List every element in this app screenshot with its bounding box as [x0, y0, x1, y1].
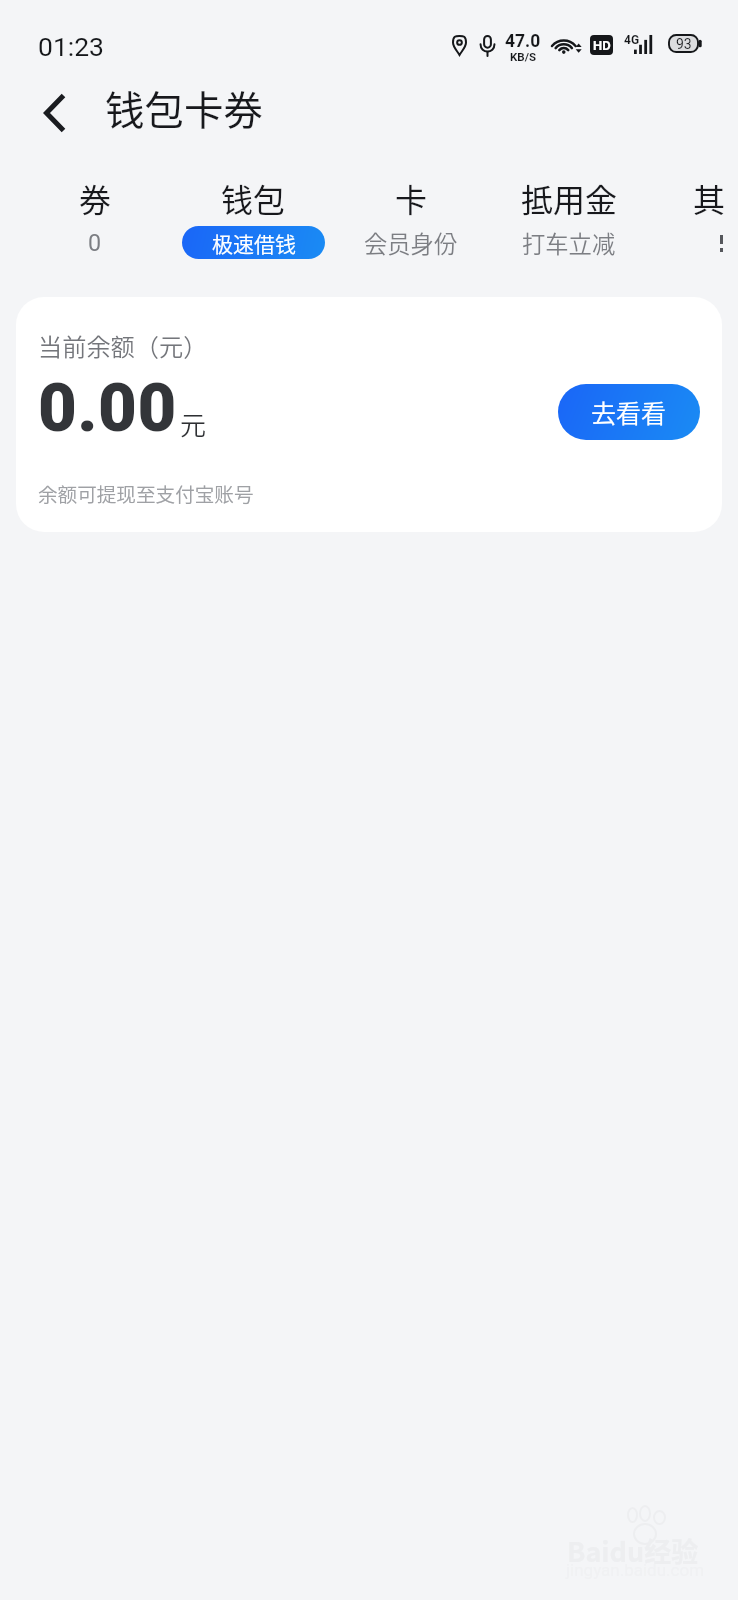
- staticText: 钱包卡券: [105, 79, 263, 136]
- staticText: 余额可提现至支付宝账号: [38, 479, 254, 507]
- staticText: 当前余额（元）: [38, 328, 208, 363]
- button[interactable]: 钱包: [174, 154, 332, 259]
- staticText: 打车立减: [522, 226, 616, 260]
- button[interactable]: 卡: [332, 154, 490, 260]
- staticText: 卡: [395, 175, 428, 221]
- button[interactable]: 去看看: [558, 384, 700, 440]
- staticText: Baidu经验: [567, 1531, 699, 1570]
- staticText: 01:23: [38, 31, 104, 62]
- staticText: KB/S: [510, 50, 537, 63]
- staticText: 0: [88, 229, 102, 256]
- staticText: 抵用金: [521, 175, 618, 221]
- staticText: 会员身份: [364, 226, 458, 260]
- staticText: 4G: [624, 33, 640, 47]
- staticText: HD: [593, 38, 611, 53]
- button[interactable]: Back: [0, 66, 105, 154]
- button[interactable]: 当前余额（元）: [16, 297, 722, 532]
- staticText: 0.00: [38, 369, 177, 448]
- staticText: 极速借钱: [212, 228, 296, 258]
- button[interactable]: 券: [16, 154, 174, 256]
- staticText: 47.0: [505, 31, 541, 52]
- staticText: 去看看: [591, 394, 667, 430]
- staticText: 券: [79, 175, 112, 221]
- button[interactable]: 其他: [646, 154, 724, 226]
- button[interactable]: 抵用金: [490, 154, 648, 260]
- staticText: 93: [676, 36, 692, 52]
- staticText: 元: [180, 405, 207, 443]
- staticText: 钱包: [221, 175, 286, 221]
- button[interactable]: 极速借钱: [182, 226, 325, 259]
- staticText: 其他: [693, 175, 724, 221]
